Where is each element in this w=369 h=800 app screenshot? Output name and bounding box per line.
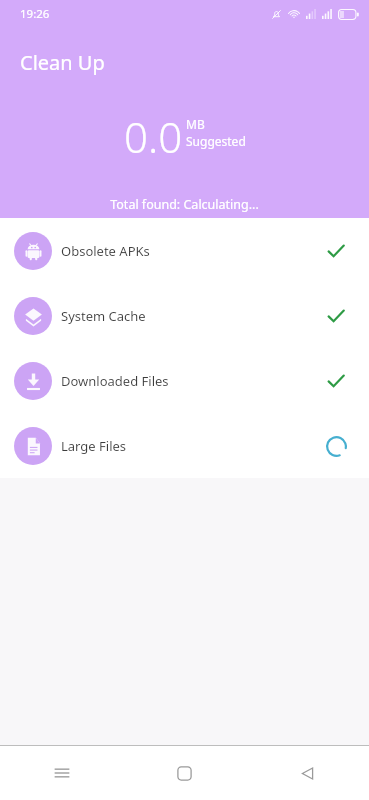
staticText: Suggested	[186, 133, 246, 149]
button[interactable]: Large Files	[0, 413, 369, 478]
staticText: Obsolete APKs	[61, 242, 314, 260]
staticText: Large Files	[61, 437, 314, 455]
staticText: Downloaded Files	[61, 372, 314, 390]
button[interactable]: Recent apps	[0, 746, 123, 800]
staticText: Total found: Calculating...	[110, 196, 259, 213]
staticText: 19:26	[20, 6, 50, 22]
button[interactable]: Home	[123, 746, 246, 800]
staticText: MB	[186, 116, 205, 132]
button[interactable]: Obsolete APKs	[0, 218, 369, 283]
staticText: 0.0	[124, 108, 183, 165]
staticText: Clean Up	[20, 49, 105, 76]
button[interactable]: Downloaded Files	[0, 348, 369, 413]
button[interactable]: Back	[246, 746, 369, 800]
staticText: System Cache	[61, 307, 314, 325]
button[interactable]: System Cache	[0, 283, 369, 348]
